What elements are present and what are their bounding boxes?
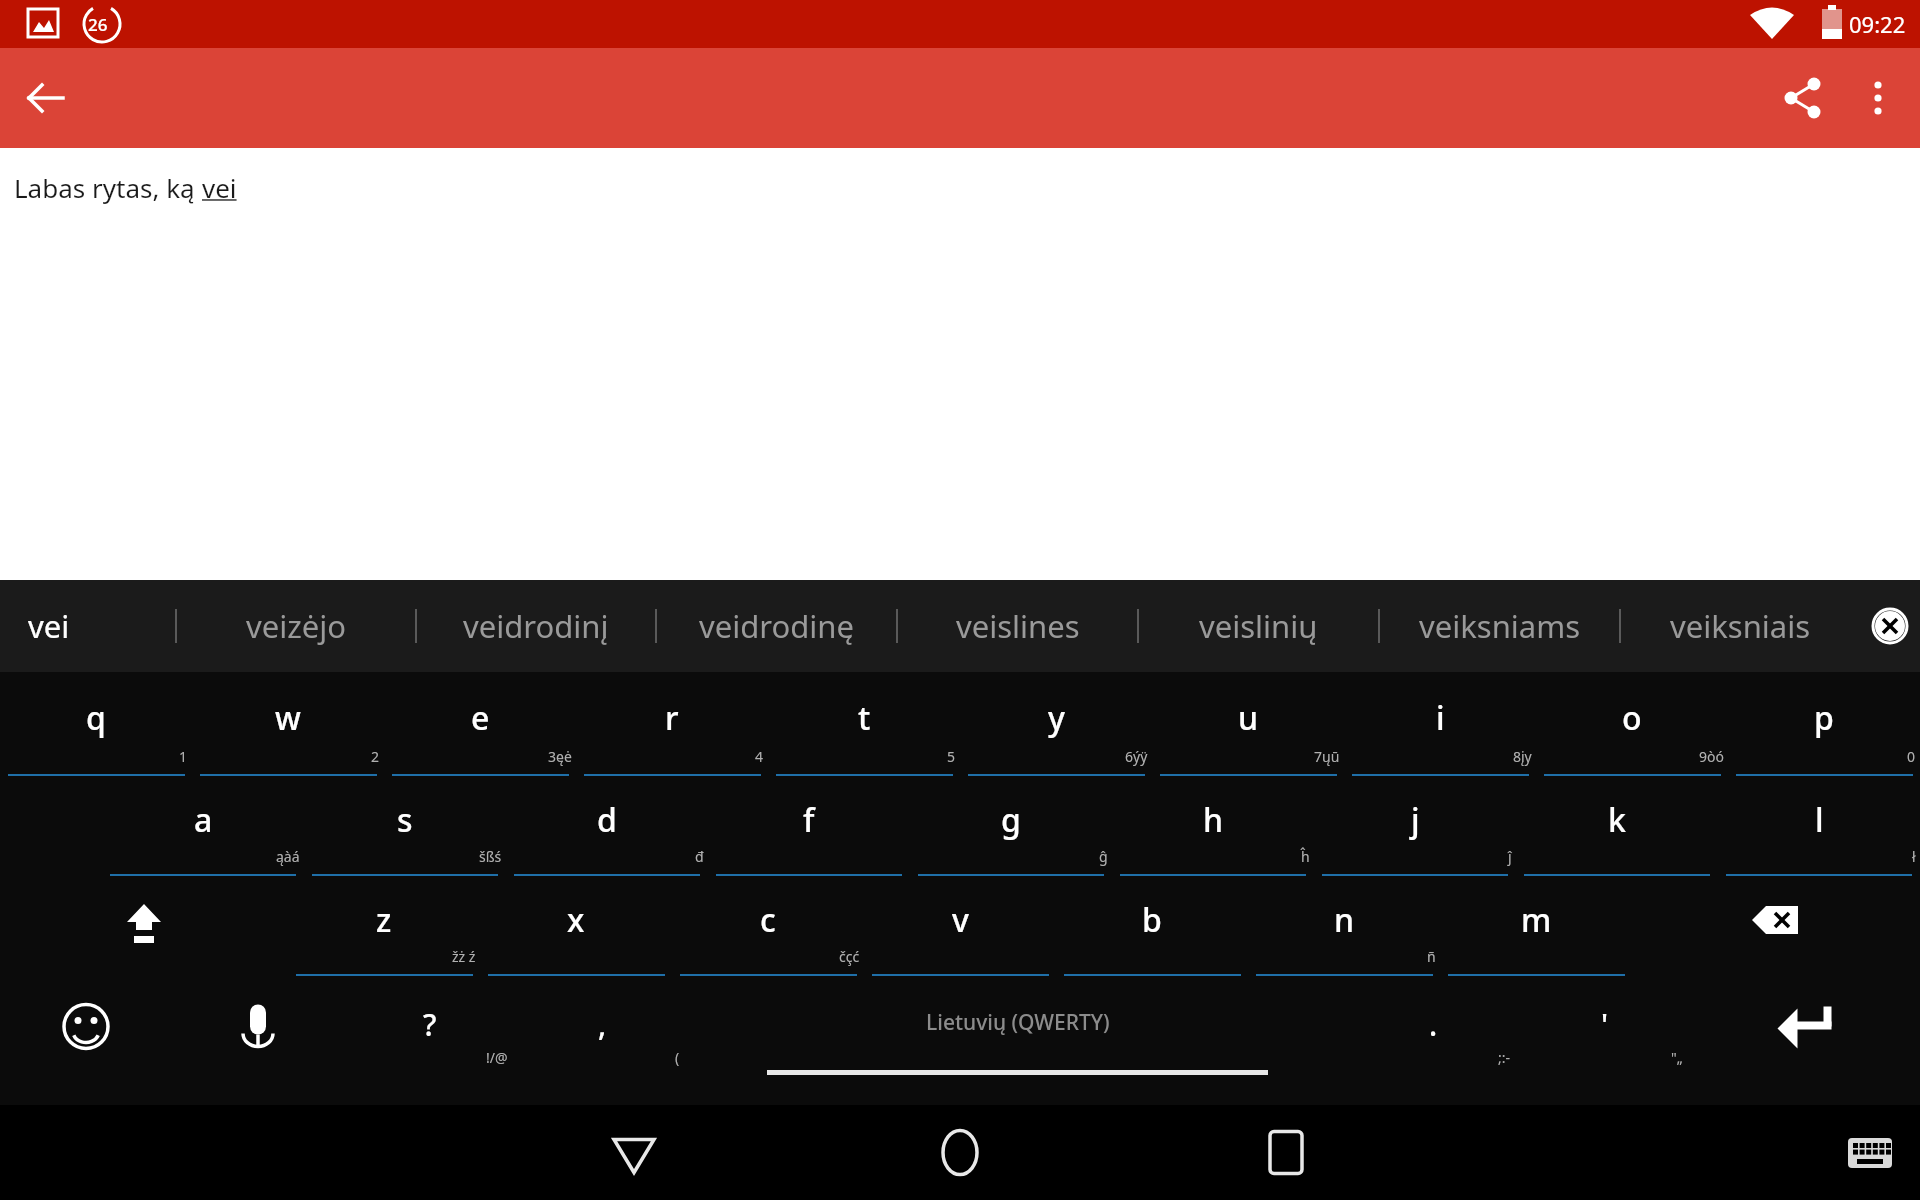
button[interactable]: l [1718,776,1920,876]
staticText: ĝ [1099,847,1108,866]
staticText: "„ [1671,1048,1683,1067]
staticText: ąàá [276,847,300,866]
button[interactable]: veiksniams [1380,580,1619,672]
staticText: veislines [956,605,1080,647]
button[interactable]: veizėjo [177,580,415,672]
staticText: x [567,898,585,942]
staticText: e [471,696,490,740]
staticText: šßś [479,847,502,866]
staticText: v [952,898,969,942]
button[interactable]: ' [1519,976,1691,1105]
button[interactable]: m [1440,876,1632,976]
button[interactable]: f [708,776,910,876]
button[interactable]: x [480,876,672,976]
staticText: a [194,798,213,842]
button[interactable]: Backspace [1632,876,1920,976]
staticText: veiksniais [1670,605,1811,647]
staticText: 5 [947,747,956,766]
button[interactable]: o [1536,672,1728,776]
button[interactable]: . [1347,976,1519,1105]
staticText: b [1142,898,1162,942]
staticText: k [1608,798,1626,842]
staticText: vei [28,605,70,647]
button[interactable]: e [384,672,576,776]
button[interactable]: veiksniais [1621,580,1860,672]
button[interactable]: Switch keyboard [1840,1123,1900,1183]
button[interactable]: y [960,672,1152,776]
button[interactable]: g [910,776,1112,876]
staticText: 1 [179,747,188,766]
button[interactable]: a [102,776,304,876]
staticText: 0 [1907,747,1916,766]
staticText: i [1436,696,1445,740]
button[interactable]: h [1112,776,1314,876]
button[interactable]: v [864,876,1056,976]
button[interactable]: Voice input [172,976,344,1105]
staticText: d [597,798,617,842]
staticText: z [376,898,392,942]
button[interactable]: Back [18,70,74,126]
staticText: ñ [1427,947,1436,966]
button[interactable]: Recent apps [1231,1105,1341,1200]
staticText: 3ęė [548,747,572,766]
staticText: q [86,696,106,740]
staticText: 7ųū [1314,747,1340,766]
button[interactable]: k [1516,776,1718,876]
button[interactable]: i [1344,672,1536,776]
staticText: !/@ [486,1048,508,1067]
staticText: s [397,798,413,842]
button[interactable]: c [672,876,864,976]
staticText: 09:22 [1849,9,1906,39]
staticText: m [1521,898,1552,942]
button[interactable]: vei [28,580,175,672]
staticText: ? [423,1004,437,1045]
staticText: žż ź [452,947,476,966]
staticText: j [1411,798,1420,842]
staticText: Lietuvių (QWERTY) [926,1008,1110,1037]
staticText: t [858,696,871,740]
staticText: čçć [839,947,860,966]
button[interactable]: veidrodinį [417,580,655,672]
button[interactable]: veidrodinę [657,580,896,672]
button[interactable]: n [1248,876,1440,976]
staticText: vei [202,170,237,205]
button[interactable]: z [288,876,480,976]
button[interactable]: Enter [1691,976,1920,1105]
staticText: 26 [88,13,108,36]
button[interactable]: veislinių [1139,580,1378,672]
button[interactable]: Back [579,1105,689,1200]
button[interactable]: Share [1772,67,1834,129]
staticText: veizėjo [246,605,347,647]
button[interactable]: j [1314,776,1516,876]
staticText: f [803,798,815,842]
button[interactable]: Lietuvių (QWERTY) [688,976,1347,1105]
button[interactable]: w [192,672,384,776]
staticText: ( [675,1048,680,1067]
button[interactable]: t [768,672,960,776]
button[interactable]: q [0,672,192,776]
button[interactable]: , [516,976,688,1105]
button[interactable]: u [1152,672,1344,776]
staticText: y [1048,696,1065,740]
button[interactable]: More options [1850,70,1906,126]
staticText: 9òó [1699,747,1724,766]
staticText: p [1814,696,1834,740]
button[interactable]: r [576,672,768,776]
staticText: r [665,696,679,740]
button[interactable]: Emoji [0,976,172,1105]
staticText: 2 [371,747,380,766]
button[interactable]: Clear suggestions [1864,600,1916,652]
button[interactable]: veislines [898,580,1137,672]
button[interactable]: Home [905,1105,1015,1200]
staticText: ;:- [1498,1048,1511,1067]
button[interactable]: Shift [0,876,288,976]
button[interactable]: ? [344,976,516,1105]
button[interactable]: d [506,776,708,876]
staticText: 4 [755,747,764,766]
button[interactable]: b [1056,876,1248,976]
button[interactable]: s [304,776,506,876]
staticText: w [275,696,301,740]
button[interactable]: p [1728,672,1920,776]
staticText: . [1429,1004,1438,1045]
staticText: n [1334,898,1355,942]
